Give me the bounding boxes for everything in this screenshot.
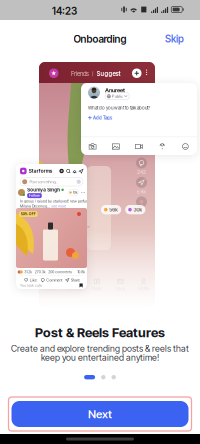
staticText: 6.4k <box>136 188 146 195</box>
staticText: 10.8k <box>77 270 85 274</box>
staticText: Reels <box>92 286 102 291</box>
staticText: Follow <box>29 193 40 198</box>
staticText: Soumya Singh <box>27 187 60 193</box>
staticText: Create and explore trending posts & reel… <box>11 343 189 354</box>
staticText: keep you entertained anytime! <box>41 352 159 363</box>
staticText: In genus / raised by starloved! new perf… <box>20 199 107 203</box>
button[interactable]: Next <box>11 401 188 427</box>
staticText: Grow with family ... <box>47 222 90 228</box>
staticText: Starforms <box>29 168 53 174</box>
staticText: 50% OFF <box>21 212 36 216</box>
staticText: Share <box>71 278 80 282</box>
staticText: 30k <box>133 207 142 213</box>
staticText: Milana Decemsq... <box>20 204 50 208</box>
staticText: Inbox <box>115 286 125 291</box>
staticText: Public <box>112 93 123 99</box>
staticText: Next <box>88 407 112 421</box>
staticText: Profile <box>138 286 149 291</box>
staticText: Comment <box>46 278 62 282</box>
staticText: 10k <box>73 190 78 195</box>
staticText: Friends <box>71 70 89 77</box>
staticText: see more <box>51 204 66 208</box>
staticText: Trending <box>66 286 82 291</box>
staticText: Onboarding <box>73 33 126 45</box>
staticText: 31.2k <box>24 270 32 274</box>
staticText: Feeds <box>45 286 56 291</box>
staticText: Post something... <box>29 179 58 184</box>
staticText: 14:23 <box>52 5 77 17</box>
staticText: 56k <box>109 207 118 213</box>
staticText: What do you want to talk about? <box>88 105 150 111</box>
staticText: Add Tags <box>93 115 112 120</box>
staticText: Like <box>30 278 37 282</box>
staticText: 3k <box>138 149 144 156</box>
staticText: 242 <box>137 169 146 175</box>
button[interactable]: Skip <box>160 29 189 49</box>
staticText: 270.3k <box>35 270 46 274</box>
staticText: Suggest <box>97 70 121 77</box>
staticText: Post & Reels Features <box>35 325 165 340</box>
staticText: You look cute <box>20 283 42 288</box>
staticText: Skip <box>165 33 184 45</box>
staticText: Anureet <box>105 86 125 94</box>
staticText: 200 comments <box>48 270 72 274</box>
